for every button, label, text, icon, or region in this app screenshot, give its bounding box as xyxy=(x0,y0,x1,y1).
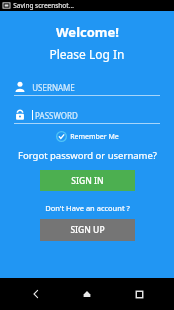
staticText: Saving screenshot… xyxy=(13,1,74,10)
other: Remember Me xyxy=(56,131,67,142)
staticText: Don't Have an account ? xyxy=(45,203,130,213)
button[interactable]: Home xyxy=(71,278,103,310)
other: Username xyxy=(14,81,26,93)
staticText: PASSWORD xyxy=(35,110,78,121)
button[interactable]: Password xyxy=(0,107,174,123)
staticText: Please Log In xyxy=(49,46,125,62)
staticText: SIGN UP xyxy=(70,224,105,236)
staticText: Forgot password or username? xyxy=(18,149,157,162)
other: Password xyxy=(14,109,26,121)
button[interactable]: Forgot password or username? xyxy=(14,148,161,163)
button[interactable]: Username xyxy=(0,79,174,95)
button[interactable]: SIGN UP xyxy=(40,219,135,241)
staticText: USERNAME xyxy=(32,82,75,93)
button[interactable]: SIGN IN xyxy=(40,170,135,191)
staticText: Welcome! xyxy=(56,23,119,41)
staticText: SIGN IN xyxy=(71,175,104,187)
button[interactable]: Remember Me xyxy=(53,129,122,144)
button[interactable]: Back xyxy=(20,278,52,310)
staticText: Remember Me xyxy=(70,132,119,142)
button[interactable]: Recent apps xyxy=(123,278,155,310)
